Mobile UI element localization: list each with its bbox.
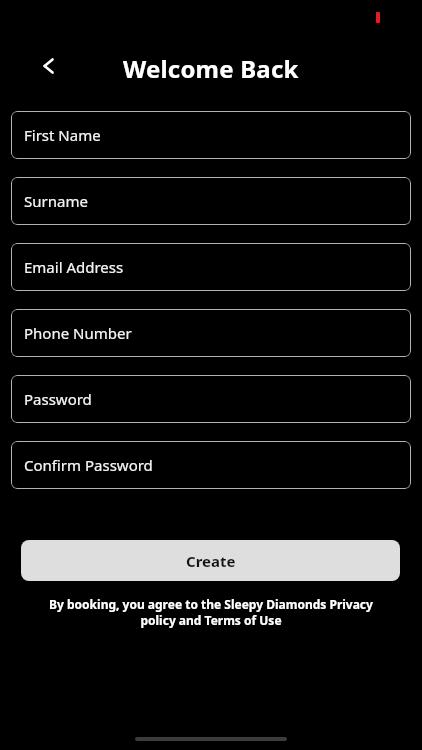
button[interactable]: Create [21,540,400,581]
button[interactable]: Password [11,375,411,423]
staticText: Confirm Password [24,455,153,475]
staticText: Password [24,389,92,409]
button[interactable]: Surname [11,177,411,225]
staticText: First Name [24,125,101,145]
button[interactable]: Phone Number [11,309,411,357]
staticText: Phone Number [24,323,132,343]
staticText: Surname [24,191,88,211]
staticText: By booking, you agree to the Sleepy Diam… [48,596,374,628]
staticText: Create [186,551,236,571]
button[interactable]: Back [29,46,69,86]
staticText: Welcome Back [123,52,299,85]
button[interactable]: Confirm Password [11,441,411,489]
button[interactable]: Email Address [11,243,411,291]
button[interactable]: First Name [11,111,411,159]
staticText: Email Address [24,257,124,277]
